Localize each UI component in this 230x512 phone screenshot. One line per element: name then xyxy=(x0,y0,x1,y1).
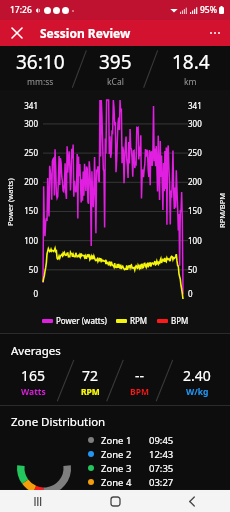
staticText: RPM xyxy=(81,386,100,398)
staticText: 12:43 xyxy=(149,448,174,461)
staticText: mm:ss xyxy=(27,76,54,88)
staticText: 395 xyxy=(99,49,132,75)
staticText: 17:26 xyxy=(10,4,32,16)
button[interactable]: Zone 2 xyxy=(88,447,230,461)
staticText: Session Review xyxy=(40,25,131,41)
staticText: 50 xyxy=(0,264,38,275)
staticText: kCal xyxy=(107,76,124,88)
button[interactable]: 36:10 xyxy=(0,46,80,90)
staticText: BPM xyxy=(130,386,149,398)
staticText: km xyxy=(184,76,197,88)
staticText: 18.4 xyxy=(172,49,210,75)
staticText: Zone Distribution xyxy=(11,414,106,430)
staticText: 250 xyxy=(0,147,38,158)
staticText: RPM/BPM xyxy=(217,192,227,228)
staticText: 95% xyxy=(200,4,217,16)
button[interactable]: Zone 3 xyxy=(88,461,230,475)
staticText: 300 xyxy=(0,118,38,129)
button[interactable]: 18.4 xyxy=(151,46,230,90)
button[interactable]: -- xyxy=(115,359,164,405)
staticText: 0 xyxy=(0,288,38,299)
staticText: 72 xyxy=(82,366,99,385)
staticText: 341 xyxy=(188,100,222,111)
staticText: 150 xyxy=(0,205,38,216)
staticText: W/kg xyxy=(186,386,209,398)
staticText: 300 xyxy=(188,118,222,129)
staticText: Power (watts) xyxy=(56,315,107,326)
staticText: 250 xyxy=(188,147,222,158)
staticText: 341 xyxy=(0,100,38,111)
staticText: Zone 3 xyxy=(101,462,141,475)
button[interactable]: 165 xyxy=(0,359,66,405)
staticText: 07:35 xyxy=(149,462,174,475)
staticText: -- xyxy=(135,366,145,385)
button[interactable]: 72 xyxy=(66,359,115,405)
button[interactable]: Home xyxy=(100,490,130,512)
button[interactable]: 2.40 xyxy=(164,359,230,405)
staticText: 100 xyxy=(188,235,222,246)
staticText: Zone 4 xyxy=(101,476,141,489)
button[interactable]: Back xyxy=(177,490,207,512)
staticText: Power (watts) xyxy=(5,178,15,226)
button[interactable]: 395 xyxy=(80,46,151,90)
staticText: 09:45 xyxy=(149,434,174,447)
staticText: 36:10 xyxy=(16,49,65,75)
staticText: Watts xyxy=(21,386,46,398)
button[interactable]: Zone 1 xyxy=(88,433,230,447)
staticText: Averages xyxy=(11,343,61,359)
staticText: 50 xyxy=(188,264,222,275)
staticText: Zone 1 xyxy=(101,434,141,447)
button[interactable]: Close xyxy=(6,22,28,44)
button[interactable]: More options xyxy=(204,22,226,44)
staticText: 03:27 xyxy=(149,476,174,489)
staticText: 150 xyxy=(188,205,222,216)
staticText: 100 xyxy=(0,235,38,246)
button[interactable]: Zone 4 xyxy=(88,475,230,489)
staticText: RPM xyxy=(130,315,148,326)
staticText: 165 xyxy=(21,366,46,385)
staticText: 2.40 xyxy=(183,366,211,385)
button[interactable]: Recent apps xyxy=(23,490,53,512)
staticText: Zone 2 xyxy=(101,448,141,461)
staticText: BPM xyxy=(171,315,189,326)
staticText: 200 xyxy=(188,176,222,187)
staticText: 200 xyxy=(0,176,38,187)
staticText: 0 xyxy=(188,288,222,299)
